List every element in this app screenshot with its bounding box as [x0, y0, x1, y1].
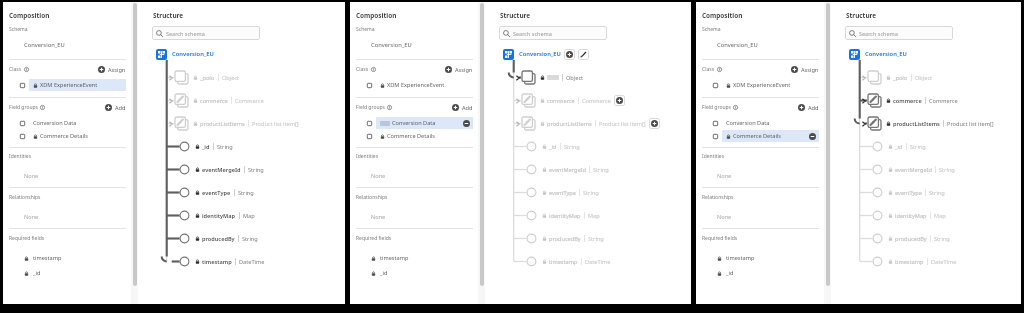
button[interactable]: Search schema: [845, 26, 953, 40]
staticText: eventMergeId: [549, 166, 586, 174]
staticText: None: [371, 172, 386, 180]
button[interactable]: Commerce Details: [356, 130, 473, 142]
button[interactable]: Schema root: [156, 49, 167, 60]
staticText: productListItems: [893, 120, 940, 128]
staticText: Conversion Data: [726, 119, 770, 127]
button[interactable]: Commerce Details: [702, 130, 819, 142]
button[interactable]: commerce: [500, 89, 691, 112]
button[interactable]: _id: [153, 135, 345, 158]
staticText: Search schema: [513, 30, 552, 37]
button[interactable]: Conversion Data: [9, 117, 126, 129]
button[interactable]: productListItems: [153, 112, 345, 135]
button[interactable]: producedBy: [846, 227, 1021, 250]
staticText: Map: [588, 212, 600, 220]
staticText: _id: [549, 143, 557, 151]
button[interactable]: eventMergeId: [500, 158, 691, 181]
button[interactable]: Conversion Data: [356, 117, 473, 129]
staticText: Required fields: [702, 235, 738, 242]
staticText: Commerce Details: [40, 132, 88, 140]
button[interactable]: _polo: [153, 66, 345, 89]
button[interactable]: Schema root: [503, 49, 514, 60]
staticText: DateTime: [239, 258, 265, 266]
staticText: Commerce: [582, 97, 611, 105]
staticText: XDM ExperienceEvent: [40, 81, 98, 89]
button[interactable]: eventMergeId: [846, 158, 1021, 181]
staticText: String: [217, 143, 233, 151]
button[interactable]: Schema root: [849, 49, 860, 60]
staticText: identityMap: [549, 212, 581, 220]
button[interactable]: commerce: [846, 89, 1021, 112]
button[interactable]: XDM ExperienceEvent: [356, 79, 473, 91]
staticText: DateTime: [585, 258, 611, 266]
staticText: producedBy: [895, 235, 927, 243]
button[interactable]: producedBy: [153, 227, 345, 250]
staticText: String: [248, 166, 264, 174]
staticText: Structure: [153, 11, 184, 20]
button[interactable]: Conversion Data: [702, 117, 819, 129]
button[interactable]: _polo: [846, 66, 1021, 89]
button[interactable]: Add: [105, 102, 126, 113]
button[interactable]: identityMap: [153, 204, 345, 227]
button[interactable]: Search schema: [152, 26, 260, 40]
staticText: Conversion_EU: [865, 50, 907, 58]
staticText: eventType: [895, 189, 922, 197]
staticText: Add: [808, 104, 819, 112]
staticText: None: [717, 213, 732, 221]
button[interactable]: XDM ExperienceEvent: [702, 79, 819, 91]
button[interactable]: Add field: [564, 49, 575, 60]
staticText: _polo: [200, 74, 215, 82]
button[interactable]: commerce: [153, 89, 345, 112]
staticText: Commerce: [235, 97, 264, 105]
button[interactable]: identityMap: [500, 204, 691, 227]
button[interactable]: timestamp: [500, 250, 691, 273]
button[interactable]: Add: [798, 102, 819, 113]
button[interactable]: _id: [846, 135, 1021, 158]
staticText: XDM ExperienceEvent: [387, 81, 445, 89]
staticText: eventMergeId: [895, 166, 932, 174]
button[interactable]: Object: [500, 66, 691, 89]
staticText: Add: [115, 104, 126, 112]
button[interactable]: eventType: [500, 181, 691, 204]
staticText: Field groups: [9, 104, 38, 111]
staticText: Composition: [356, 11, 397, 20]
button[interactable]: Assign: [791, 64, 819, 75]
button[interactable]: eventType: [153, 181, 345, 204]
button[interactable]: _id: [500, 135, 691, 158]
button[interactable]: XDM ExperienceEvent: [9, 79, 126, 91]
button[interactable]: productListItems: [846, 112, 1021, 135]
staticText: _id: [895, 143, 903, 151]
staticText: Assign: [801, 66, 819, 74]
button[interactable]: eventMergeId: [153, 158, 345, 181]
staticText: Commerce: [929, 97, 958, 105]
staticText: _id: [33, 269, 41, 277]
staticText: identityMap: [202, 212, 236, 220]
button[interactable]: Commerce Details: [9, 130, 126, 142]
staticText: commerce: [200, 97, 228, 105]
button[interactable]: producedBy: [500, 227, 691, 250]
button[interactable]: Search schema: [499, 26, 607, 40]
button[interactable]: timestamp: [153, 250, 345, 273]
staticText: Identities: [9, 153, 32, 160]
button[interactable]: Add: [452, 102, 473, 113]
staticText: identityMap: [895, 212, 927, 220]
staticText: Class: [702, 66, 715, 73]
staticText: String: [583, 189, 599, 197]
button[interactable]: identityMap: [846, 204, 1021, 227]
staticText: _id: [726, 269, 734, 277]
staticText: eventType: [549, 189, 576, 197]
button[interactable]: productListItems: [500, 112, 691, 135]
staticText: Required fields: [356, 235, 392, 242]
button[interactable]: timestamp: [846, 250, 1021, 273]
button[interactable]: Edit schema: [578, 49, 589, 60]
staticText: Product list item[]: [947, 120, 994, 128]
staticText: String: [238, 189, 254, 197]
staticText: DateTime: [931, 258, 957, 266]
button[interactable]: Assign: [445, 64, 473, 75]
staticText: producedBy: [202, 235, 235, 243]
button[interactable]: Add child field: [649, 118, 660, 129]
staticText: Identities: [356, 153, 379, 160]
button[interactable]: eventType: [846, 181, 1021, 204]
button[interactable]: Add child field: [614, 95, 625, 106]
staticText: Field groups: [702, 104, 731, 111]
button[interactable]: Assign: [98, 64, 126, 75]
